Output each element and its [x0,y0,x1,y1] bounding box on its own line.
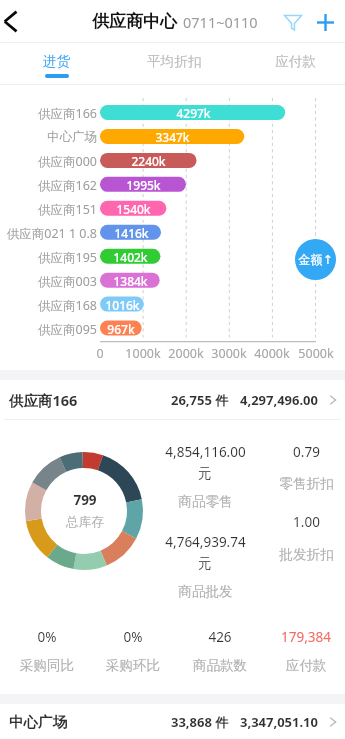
staticText: 3000k [211,345,247,362]
staticText: 1000k [125,345,161,362]
staticText: 1995k [126,177,161,192]
button[interactable]: 426 [177,623,263,687]
staticText: 中心广场 [47,129,97,144]
staticText: 1540k [116,201,151,216]
staticText: 采购同比 [4,657,90,674]
staticText: 4297k [176,105,211,120]
staticText: 批发折扣 [279,546,334,563]
staticText: 0711~0110 [183,12,258,32]
staticText: 供应商中心 [92,11,177,32]
staticText: 采购环比 [90,657,176,674]
staticText: 5000k [298,345,334,362]
staticText: 0% [90,628,176,646]
button[interactable]: Back [0,0,38,43]
staticText: 零售折扣 [279,475,334,492]
staticText: 供应商151 [38,201,97,216]
staticText: 金额↑ [298,252,333,267]
staticText: 426 [177,628,263,646]
staticText: 1016k [105,297,140,312]
staticText: 1402k [113,249,148,264]
staticText: 供应商095 [38,321,97,336]
button[interactable]: 金额↑ [295,239,336,280]
button[interactable]: 供应商166 [0,380,345,419]
staticText: 0 [96,345,104,362]
staticText: 供应商166 [38,105,97,120]
staticText: 2240k [131,153,166,168]
staticText: 2000k [168,345,204,362]
staticText: 4,854,116.00 [165,443,246,461]
staticText: 总库存 [66,514,104,530]
staticText: 中心广场 [9,713,67,731]
staticText: 供应商003 [38,273,97,288]
button[interactable]: 179,384 [263,623,345,687]
button[interactable]: Filter [277,6,309,38]
button[interactable]: 0% [4,623,90,687]
staticText: 3,347,051.10 [240,713,318,731]
staticText: 799 [73,491,97,509]
staticText: 商品批发 [178,583,233,600]
staticText: 供应商168 [38,297,97,312]
staticText: 平均折扣 [147,53,202,70]
staticText: 进货 [43,53,71,70]
button[interactable]: 0% [90,623,176,687]
staticText: 供应商021 1 0.8 [6,225,97,240]
staticText: 0.79 [293,443,320,461]
staticText: 供应商000 [38,153,97,168]
staticText: 元 [198,555,212,572]
staticText: 967k [107,321,135,336]
staticText: 0% [4,628,90,646]
staticText: 26,755 件 [171,391,229,409]
staticText: 供应商162 [38,177,97,192]
staticText: 元 [198,465,212,482]
button[interactable]: 进货 [7,43,107,85]
staticText: 1384k [113,273,148,288]
staticText: 商品款数 [177,657,263,674]
staticText: 供应商195 [38,249,97,264]
staticText: 4,297,496.00 [240,391,318,409]
button[interactable]: 应付款 [245,43,345,85]
staticText: 4000k [254,345,290,362]
button[interactable]: Add [309,6,341,38]
staticText: 4,764,939.74 [165,533,246,551]
staticText: 179,384 [263,628,345,646]
staticText: 1416k [114,225,149,240]
staticText: 1.00 [293,513,320,531]
staticText: 商品零售 [178,493,233,510]
button[interactable]: 平均折扣 [124,43,224,85]
staticText: 33,868 件 [171,713,229,731]
staticText: 供应商166 [9,390,78,410]
staticText: 3347k [155,129,190,144]
button[interactable]: 中心广场 [0,704,345,739]
staticText: 应付款 [275,53,316,70]
staticText: 应付款 [263,657,345,674]
